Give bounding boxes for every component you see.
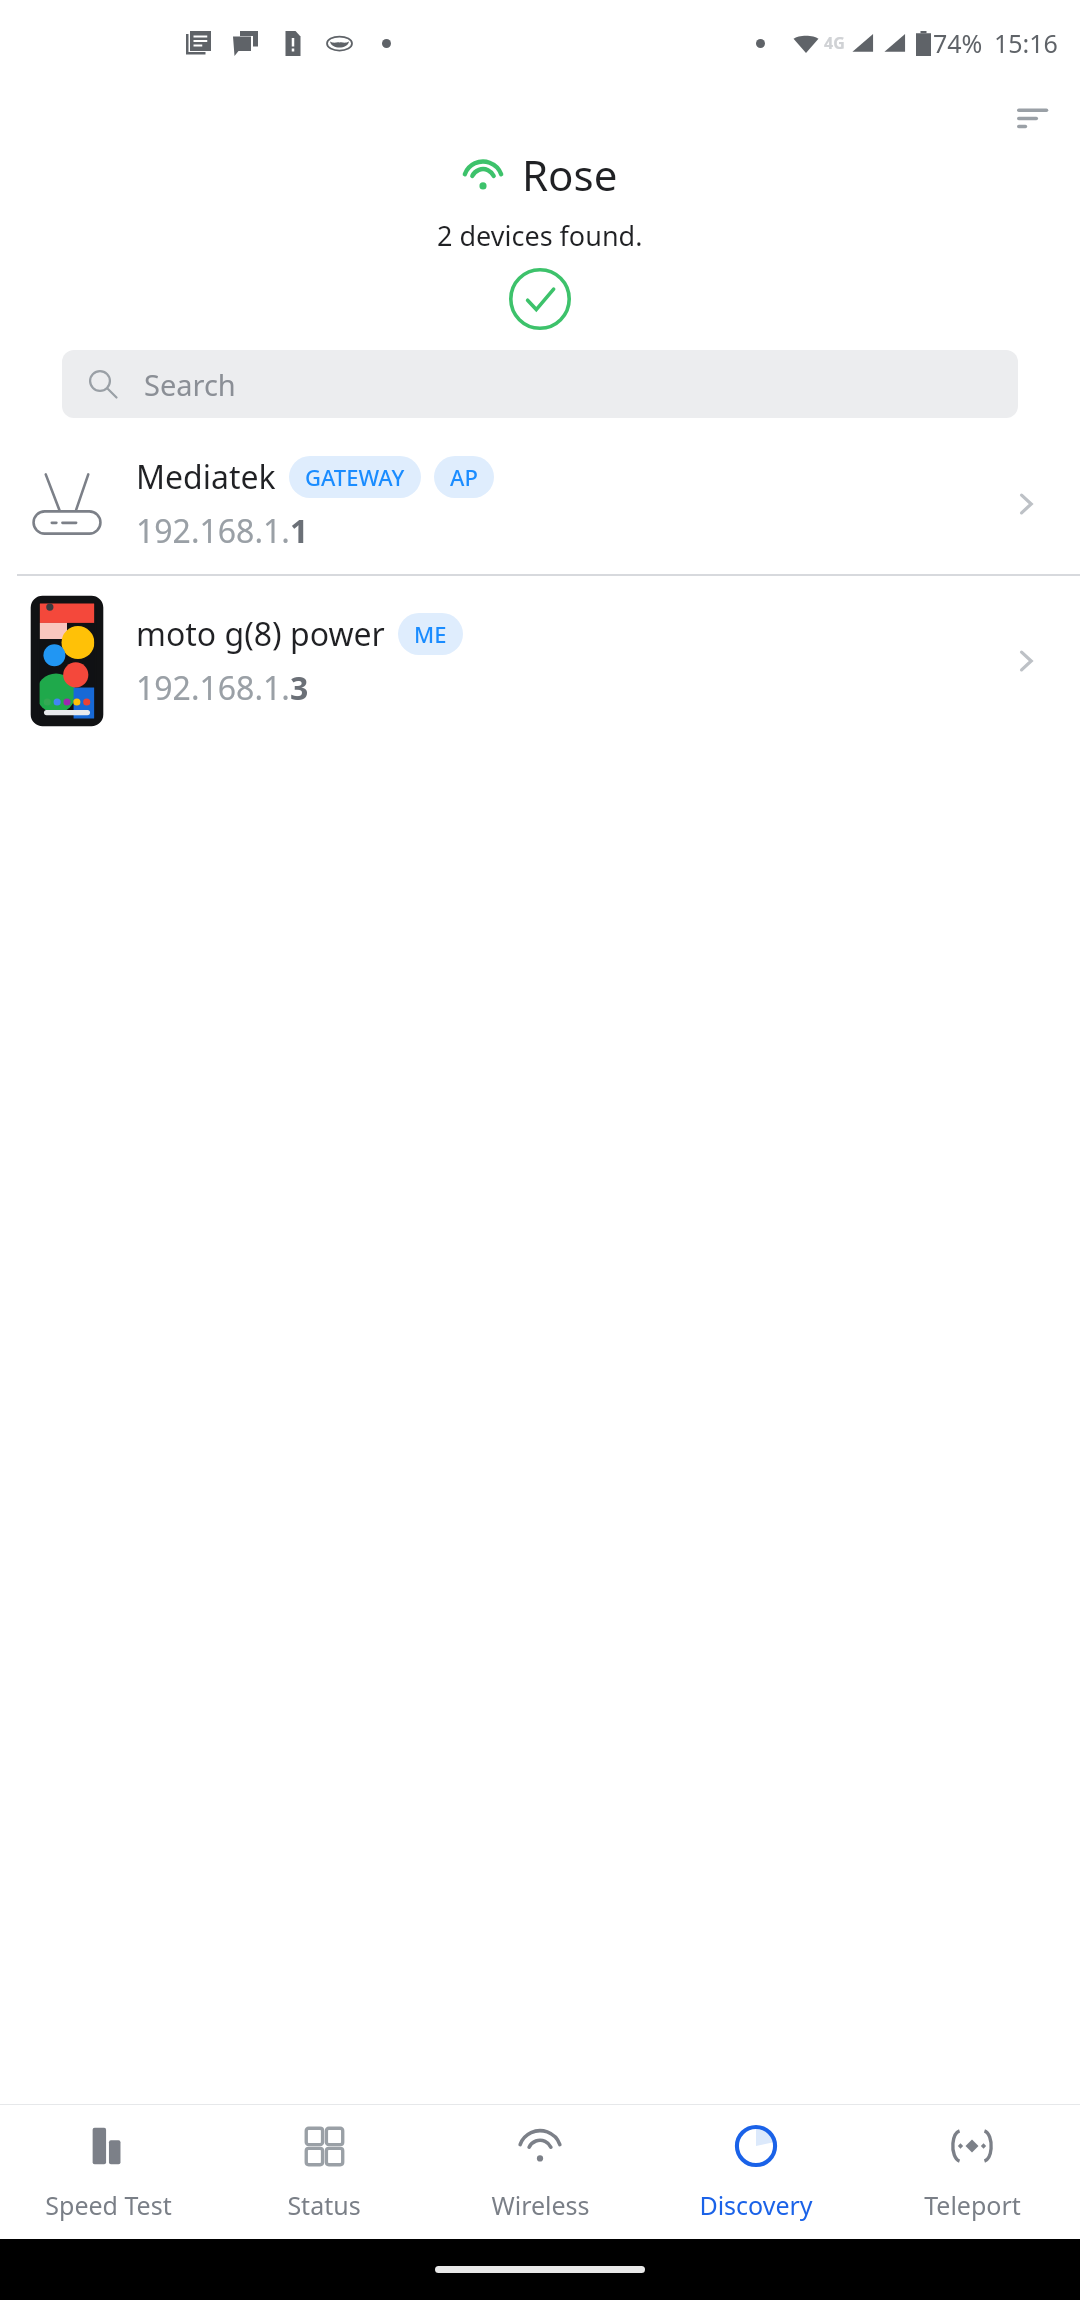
button[interactable]: Status bbox=[216, 2105, 432, 2239]
staticText: 15:16 bbox=[994, 26, 1058, 60]
button[interactable]: Wireless bbox=[432, 2105, 648, 2239]
button[interactable]: Mediatek bbox=[0, 434, 1080, 574]
button[interactable]: Speed Test bbox=[0, 2105, 216, 2239]
staticText: 192.168.1. bbox=[136, 666, 290, 710]
button[interactable]: Filter bbox=[1006, 90, 1062, 146]
button[interactable]: Search bbox=[62, 350, 1018, 418]
staticText: Discovery bbox=[699, 2188, 813, 2222]
staticText: 3 bbox=[290, 666, 309, 710]
staticText: Wireless bbox=[491, 2188, 590, 2222]
staticText: moto g(8) power bbox=[136, 612, 385, 656]
button[interactable]: Discovery bbox=[648, 2105, 864, 2239]
staticText: Speed Test bbox=[45, 2188, 172, 2222]
staticText: GATEWAY bbox=[305, 462, 405, 492]
button[interactable]: Details bbox=[996, 631, 1056, 691]
staticText: 4G bbox=[824, 32, 845, 54]
button[interactable]: Teleport bbox=[864, 2105, 1080, 2239]
staticText: AP bbox=[450, 462, 478, 492]
staticText: 74% bbox=[933, 26, 983, 60]
button[interactable]: moto g(8) power bbox=[0, 576, 1080, 746]
staticText: 1 bbox=[290, 509, 309, 553]
staticText: Teleport bbox=[924, 2188, 1021, 2222]
staticText: Search bbox=[144, 365, 236, 404]
staticText: ME bbox=[414, 619, 447, 649]
staticText: 192.168.1. bbox=[136, 509, 290, 553]
staticText: 2 devices found. bbox=[437, 217, 643, 254]
button[interactable]: Details bbox=[996, 474, 1056, 534]
staticText: Mediatek bbox=[136, 455, 276, 499]
staticText: Status bbox=[287, 2188, 361, 2222]
staticText: Rose bbox=[522, 146, 618, 203]
